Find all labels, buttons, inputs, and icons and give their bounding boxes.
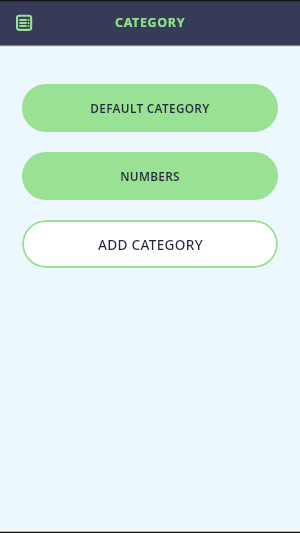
- staticText: ADD CATEGORY: [98, 235, 203, 254]
- button[interactable]: ADD CATEGORY: [22, 220, 278, 268]
- button[interactable]: Categories list: [4, 8, 36, 40]
- staticText: DEFAULT CATEGORY: [90, 100, 210, 116]
- staticText: NUMBERS: [120, 168, 180, 184]
- staticText: CATEGORY: [115, 14, 186, 31]
- button[interactable]: DEFAULT CATEGORY: [22, 84, 278, 132]
- button[interactable]: NUMBERS: [22, 152, 278, 200]
